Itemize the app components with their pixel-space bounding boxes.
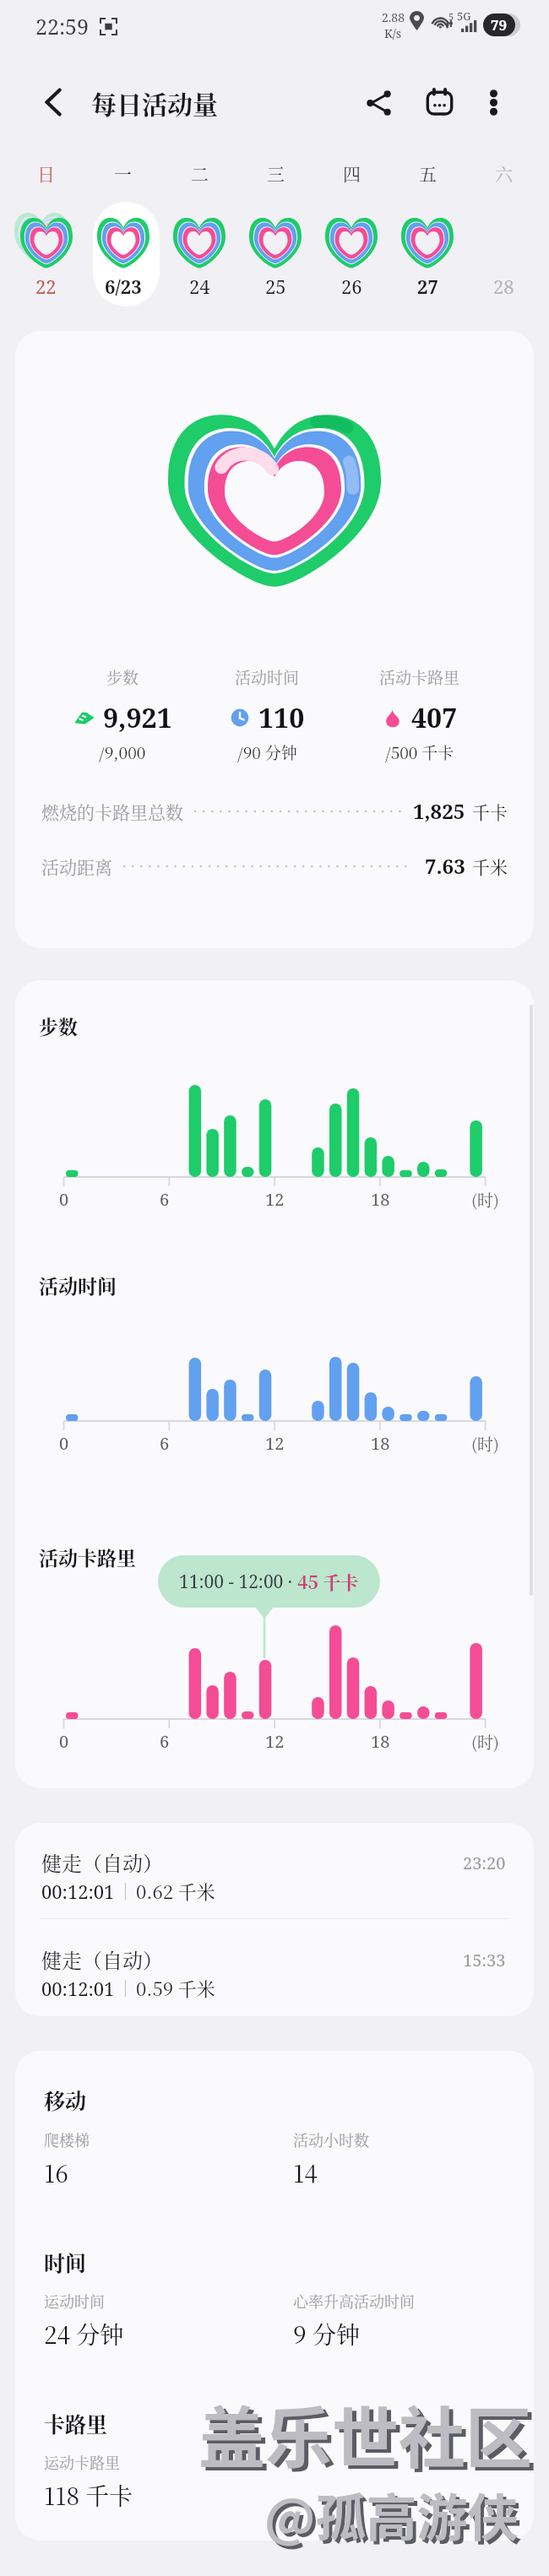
staticText: 爬楼梯 (44, 2129, 90, 2150)
staticText: 活动时间 (39, 1272, 117, 1299)
staticText: 18 (371, 1432, 390, 1455)
staticText: 每日活动量 (91, 84, 218, 121)
staticText: (时) (471, 1432, 499, 1455)
staticText: 9 分钟 (293, 2317, 360, 2351)
staticText: 6/23 (105, 274, 142, 299)
button[interactable]: 运动卡路里 (44, 2451, 133, 2512)
button[interactable]: 28 (465, 274, 541, 299)
staticText: 移动 (44, 2085, 87, 2115)
button[interactable]: 6/23 (84, 274, 161, 299)
staticText: 24 (189, 274, 210, 299)
staticText: 六 (495, 160, 513, 186)
button[interactable]: 健走（自动） (15, 1920, 534, 2016)
staticText: 18 (371, 1188, 390, 1211)
staticText: 110 (258, 699, 305, 736)
staticText: 活动卡路里 (39, 1543, 136, 1571)
staticText: 23:20 (463, 1852, 506, 1874)
staticText: 心率升高活动时间 (293, 2290, 415, 2312)
staticText: 五 (419, 160, 437, 186)
button[interactable]: Share (358, 82, 399, 122)
staticText: 千米 (472, 854, 508, 879)
staticText: 24 分钟 (44, 2317, 124, 2351)
button[interactable]: 27 (389, 274, 465, 299)
staticText: @孤高游侠 (268, 2481, 522, 2554)
staticText: 时间 (44, 2247, 87, 2277)
staticText: 1,825 (413, 797, 465, 825)
staticText: 盖乐世社区 (203, 2389, 536, 2485)
staticText: 7.63 (425, 852, 465, 880)
staticText: 活动小时数 (293, 2129, 369, 2150)
staticText: (时) (471, 1730, 499, 1753)
button[interactable]: 运动时间 (44, 2290, 124, 2351)
staticText: 11:00 - 12:00 · (179, 1570, 297, 1594)
staticText: 6 (160, 1432, 170, 1455)
staticText: 12 (265, 1730, 285, 1753)
button[interactable]: 24 (161, 274, 237, 299)
button[interactable]: 25 (237, 274, 313, 299)
staticText: 22 (35, 274, 57, 299)
staticText: 健走（自动） (41, 1847, 163, 1876)
staticText: /500 千卡 (385, 740, 454, 763)
button[interactable]: 活动小时数 (293, 2129, 369, 2189)
staticText: 燃烧的卡路里总数 (41, 799, 183, 824)
staticText: 日 (37, 160, 55, 186)
staticText: 26 (341, 274, 362, 299)
staticText: @孤高游侠 (264, 2477, 519, 2551)
staticText: 千卡 (472, 799, 508, 824)
staticText: 2.88 (382, 9, 405, 25)
staticText: 16 (44, 2156, 68, 2189)
staticText: 6 (160, 1188, 170, 1211)
staticText: 四 (343, 160, 361, 186)
staticText: 45 千卡 (297, 1569, 359, 1594)
button[interactable]: More options (473, 82, 514, 122)
button[interactable]: 活动时间 (182, 665, 351, 763)
button[interactable]: 22 (8, 274, 84, 299)
staticText: 0 (59, 1730, 69, 1753)
staticText: 活动距离 (41, 854, 112, 879)
button[interactable]: 健走（自动） (15, 1823, 534, 1919)
staticText: 00:12:01 (41, 1879, 115, 1904)
button[interactable]: Back (33, 82, 73, 122)
button[interactable]: 步数 (15, 331, 534, 948)
staticText: 18 (371, 1730, 390, 1753)
staticText: 活动时间 (235, 665, 300, 688)
staticText: 6 (160, 1730, 170, 1753)
staticText: 运动卡路里 (44, 2451, 120, 2473)
staticText: 步数 (39, 1012, 78, 1040)
staticText: 118 千卡 (44, 2478, 133, 2512)
staticText: K/s (384, 25, 402, 41)
staticText: 0 (59, 1188, 69, 1211)
staticText: 0 (59, 1432, 69, 1455)
staticText: 一 (114, 160, 132, 186)
staticText: 28 (493, 274, 514, 299)
staticText: 5G (457, 8, 471, 24)
staticText: 运动时间 (44, 2290, 105, 2312)
staticText: 00:12:01 (41, 1976, 115, 2001)
staticText: 0.59 千米 (136, 1975, 215, 2002)
staticText: 三 (267, 160, 285, 186)
button[interactable]: 11:00 - 12:00 · (158, 1555, 380, 1608)
staticText: 卡路里 (44, 2408, 108, 2438)
button[interactable]: Calendar (419, 82, 459, 122)
staticText: 5 (448, 10, 454, 23)
staticText: 盖乐世社区 (198, 2385, 532, 2481)
button[interactable]: 步数 (38, 665, 207, 763)
button[interactable]: 心率升高活动时间 (293, 2290, 415, 2351)
staticText: 25 (265, 274, 286, 299)
staticText: 14 (293, 2156, 318, 2189)
staticText: 27 (417, 274, 438, 299)
staticText: (时) (471, 1188, 499, 1211)
staticText: 二 (191, 160, 209, 186)
button[interactable]: 26 (313, 274, 389, 299)
staticText: 22:59 (35, 12, 90, 41)
button[interactable]: 活动卡路里 (335, 665, 504, 763)
staticText: 79 (491, 15, 508, 35)
staticText: 步数 (106, 665, 139, 688)
staticText: 15:33 (463, 1949, 506, 1971)
staticText: 12 (265, 1188, 285, 1211)
staticText: 健走（自动） (41, 1944, 163, 1973)
staticText: 0.62 千米 (136, 1878, 215, 1905)
button[interactable]: 爬楼梯 (44, 2129, 90, 2189)
staticText: 活动卡路里 (379, 665, 460, 688)
staticText: 9,921 (103, 699, 172, 736)
